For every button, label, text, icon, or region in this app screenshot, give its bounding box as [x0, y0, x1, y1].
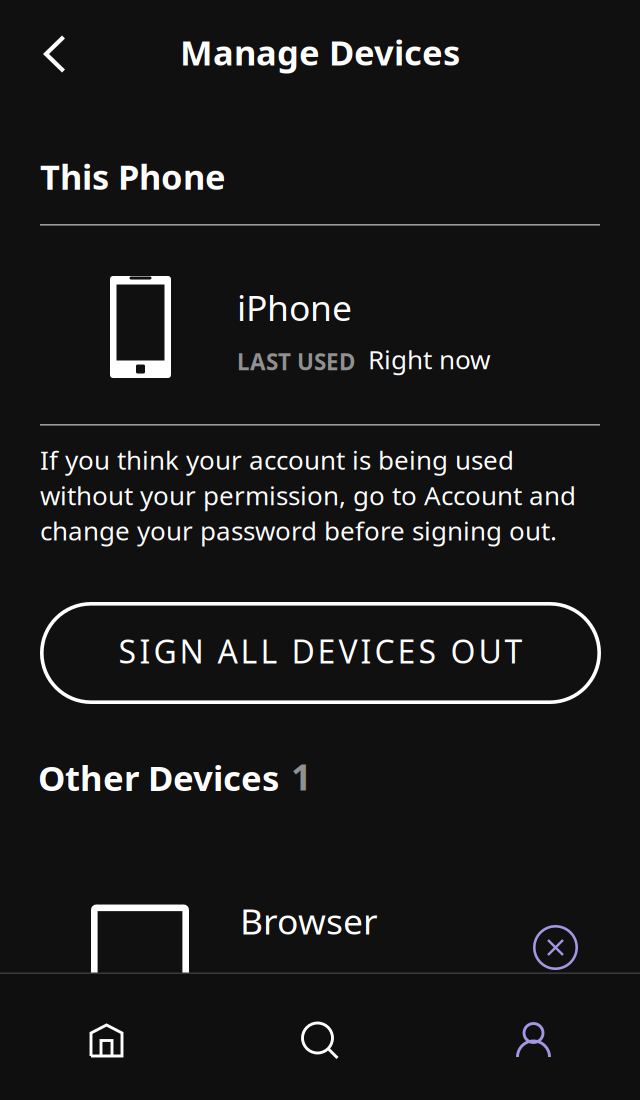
staticText: LAST USED — [237, 346, 355, 377]
button[interactable]: Search — [213, 974, 427, 1100]
staticText: This Phone — [40, 153, 226, 200]
button[interactable]: SIGN ALL DEVICES OUT — [40, 602, 601, 704]
button[interactable]: Sign out Browser — [533, 925, 578, 970]
staticText: Other Devices — [38, 754, 279, 801]
button[interactable]: Browser — [0, 822, 640, 972]
staticText: iPhone — [237, 283, 352, 331]
button[interactable]: Profile — [427, 974, 640, 1100]
staticText: Browser — [240, 896, 378, 945]
staticText: Manage Devices — [180, 28, 460, 75]
button[interactable]: Home — [0, 974, 213, 1100]
button[interactable]: iPhone — [0, 226, 640, 424]
button[interactable]: Back — [19, 16, 91, 88]
staticText: Right now — [368, 341, 491, 377]
staticText: SIGN ALL DEVICES OUT — [118, 630, 522, 672]
staticText: If you think your account is being used … — [40, 442, 576, 548]
staticText: 1 — [291, 752, 312, 801]
